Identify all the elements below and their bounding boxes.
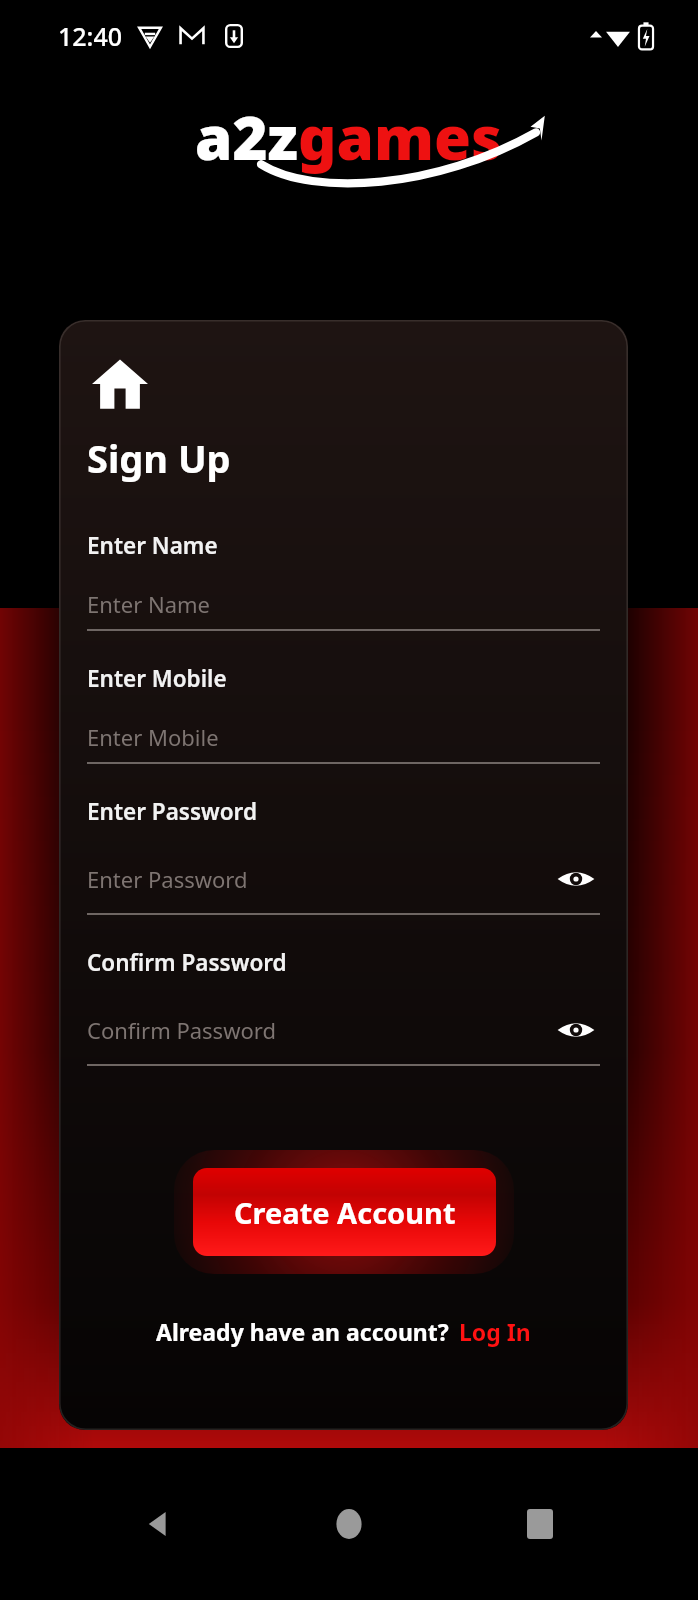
- button[interactable]: Toggle password visibility: [552, 855, 600, 903]
- button[interactable]: Enter Name: [87, 530, 600, 631]
- staticText: Enter Mobile: [87, 722, 219, 752]
- button[interactable]: Recent apps: [508, 1492, 572, 1556]
- button[interactable]: Toggle password visibility: [552, 1006, 600, 1054]
- staticText: Confirm Password: [87, 1015, 276, 1045]
- staticText: Enter Name: [87, 589, 211, 619]
- button[interactable]: Log In: [459, 1316, 531, 1347]
- staticText: Create Account: [234, 1193, 456, 1232]
- staticText: Enter Password: [87, 864, 248, 894]
- button[interactable]: Home: [317, 1492, 381, 1556]
- staticText: 12:40: [58, 19, 123, 53]
- staticText: Already have an account?: [156, 1316, 449, 1347]
- staticText: Log In: [459, 1316, 531, 1347]
- staticText: games: [298, 96, 503, 178]
- button[interactable]: Confirm Password: [87, 947, 600, 1066]
- button[interactable]: Enter Mobile: [87, 663, 600, 764]
- staticText: Enter Mobile: [87, 663, 227, 694]
- button[interactable]: Create Account: [193, 1168, 496, 1256]
- staticText: Enter Name: [87, 530, 218, 561]
- staticText: Confirm Password: [87, 947, 287, 978]
- staticText: Sign Up: [87, 432, 231, 484]
- staticText: Enter Password: [87, 796, 257, 827]
- button[interactable]: Back: [127, 1492, 191, 1556]
- staticText: a2z: [195, 96, 298, 178]
- button[interactable]: Home: [87, 350, 153, 416]
- button[interactable]: Enter Password: [87, 796, 600, 915]
